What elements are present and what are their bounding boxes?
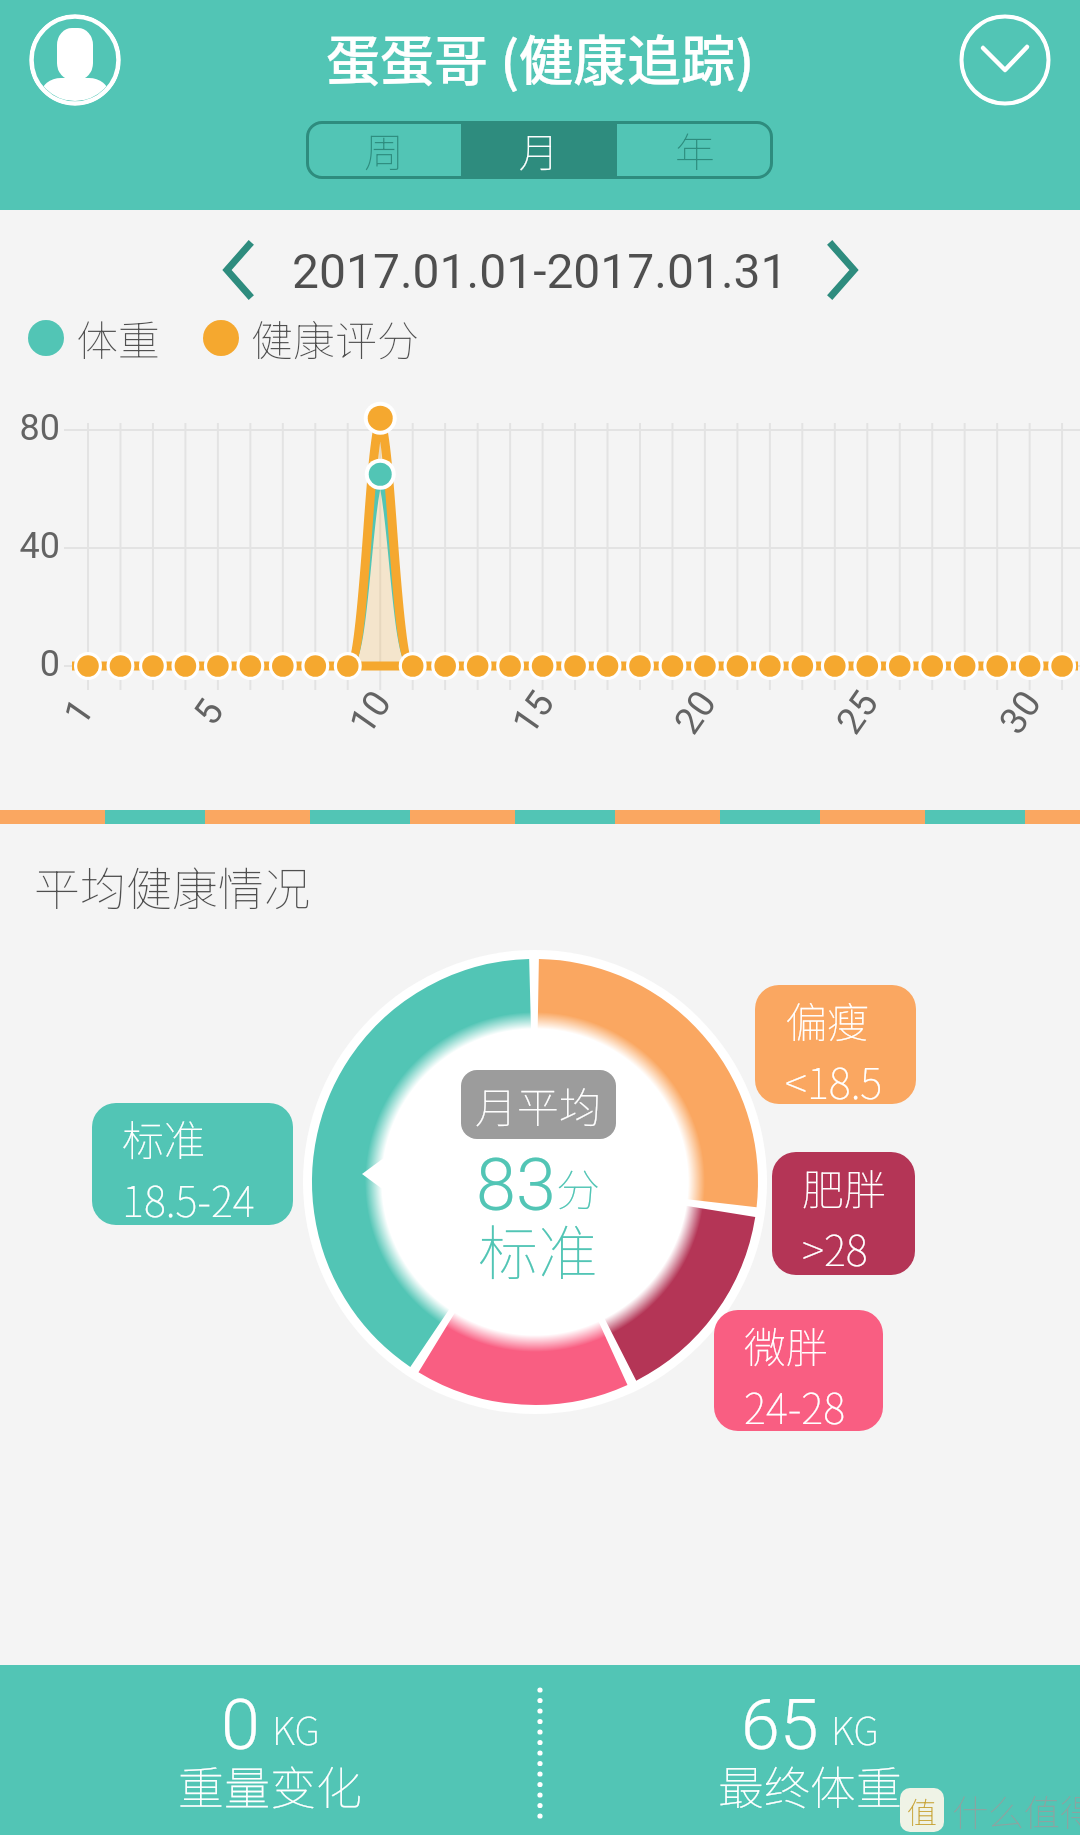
staticText: KG: [831, 1701, 879, 1756]
staticText: 平均健康情况: [34, 853, 310, 920]
staticText: 重量变化: [178, 1752, 362, 1812]
staticText: 1: [55, 691, 102, 733]
button[interactable]: [29, 14, 121, 106]
staticText: 83: [476, 1143, 556, 1227]
staticText: 肥胖: [802, 1156, 885, 1217]
staticText: <18.5: [785, 1050, 883, 1100]
staticText: >28: [802, 1217, 868, 1271]
staticText: 0: [221, 1684, 260, 1766]
staticText: 月: [519, 121, 559, 179]
staticText: 年: [675, 121, 715, 179]
staticText: 月平均: [475, 1074, 602, 1135]
staticText: 微胖: [744, 1314, 829, 1375]
staticText: 体重: [76, 307, 161, 368]
staticText: 5: [185, 691, 232, 733]
staticText: 15: [504, 683, 563, 742]
button[interactable]: 周: [306, 121, 461, 179]
staticText: 标准: [122, 1107, 207, 1168]
staticText: 40: [10, 525, 60, 567]
staticText: 标准: [478, 1205, 598, 1292]
staticText: 25: [828, 683, 887, 742]
button[interactable]: 年: [617, 121, 773, 179]
staticText: 值: [907, 1789, 937, 1832]
staticText: 24-28: [744, 1375, 846, 1427]
staticText: 65: [741, 1684, 819, 1766]
staticText: KG: [272, 1701, 320, 1756]
staticText: 最终体重: [718, 1752, 902, 1812]
staticText: 什么值得买: [952, 1784, 1080, 1835]
staticText: 18.5-24: [122, 1168, 255, 1221]
staticText: 2017.01.01-2017.01.31: [292, 243, 788, 299]
staticText: 分: [556, 1155, 600, 1219]
button[interactable]: 月: [461, 121, 617, 179]
staticText: 30: [991, 683, 1050, 742]
button[interactable]: [959, 14, 1051, 106]
staticText: 20: [666, 683, 725, 742]
staticText: 0: [10, 643, 60, 685]
button[interactable]: [812, 238, 876, 302]
button[interactable]: [205, 238, 269, 302]
staticText: 偏瘦: [785, 989, 870, 1050]
staticText: 健康评分: [251, 307, 420, 368]
staticText: 蛋蛋哥 (健康追踪): [326, 18, 755, 96]
staticText: 10: [341, 683, 400, 742]
staticText: 80: [10, 407, 60, 449]
staticText: 周: [364, 121, 404, 179]
